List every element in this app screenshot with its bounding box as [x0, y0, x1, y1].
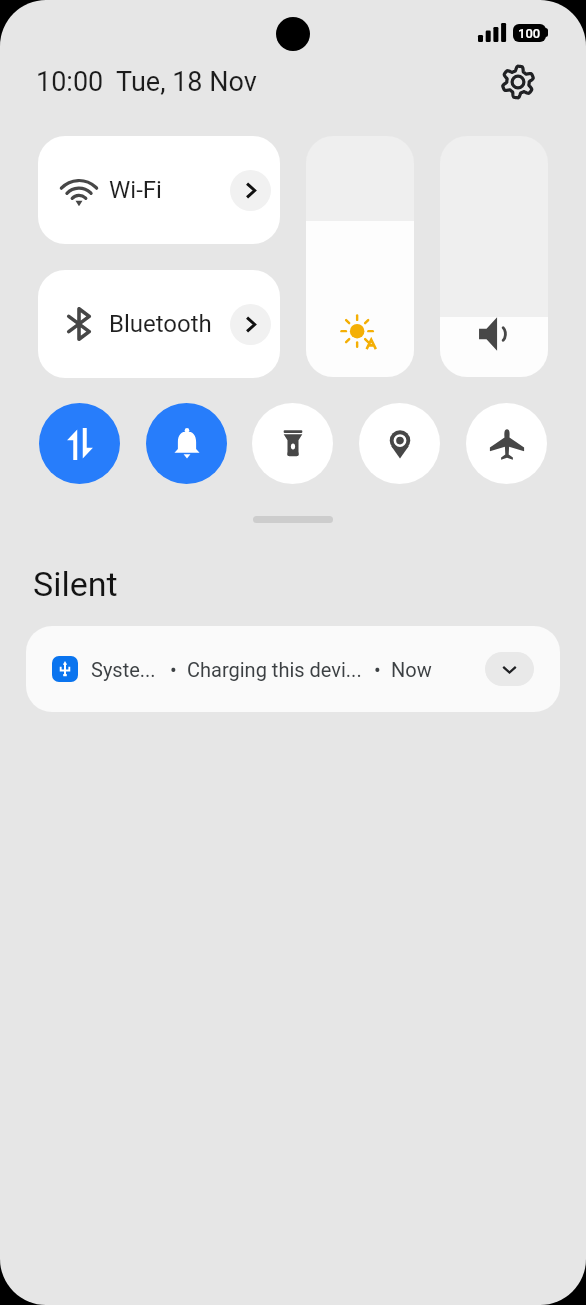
staticText: 100 [518, 26, 541, 41]
staticText: Bluetooth [109, 310, 212, 338]
staticText: Silent [33, 564, 118, 604]
staticText: Syste... [91, 658, 156, 681]
button[interactable]: Flashlight [252, 403, 333, 484]
button[interactable]: Open Bluetooth settings [230, 304, 271, 345]
button[interactable]: Bluetooth [38, 270, 280, 378]
staticText: • [170, 658, 177, 681]
button[interactable]: Mobile data [39, 403, 120, 484]
staticText: 10:00 Tue, 18 Nov [36, 66, 257, 98]
staticText: Charging this devi... [187, 658, 362, 681]
button[interactable]: Settings [496, 60, 540, 104]
button[interactable]: Notifications [146, 403, 227, 484]
staticText: Wi-Fi [109, 176, 162, 204]
button[interactable]: Syste... [26, 626, 560, 712]
button[interactable]: Expand [485, 652, 534, 686]
button[interactable]: Airplane mode [466, 403, 547, 484]
button[interactable]: Open Wi-Fi settings [230, 170, 271, 211]
staticText: Now [391, 658, 432, 681]
button[interactable]: Wi-Fi [38, 136, 280, 244]
staticText: • [374, 658, 381, 681]
button[interactable]: Location [359, 403, 440, 484]
button[interactable]: Brightness [306, 136, 414, 377]
button[interactable]: Volume [440, 136, 548, 377]
